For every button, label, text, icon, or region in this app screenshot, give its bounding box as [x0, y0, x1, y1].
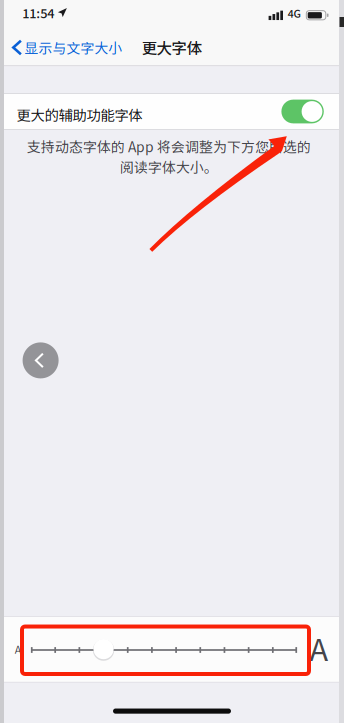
staticText: 11:54 [22, 3, 54, 22]
staticText: A [309, 625, 328, 670]
staticText: 更大的辅助功能字体 [16, 104, 142, 125]
staticText: 显示与文字大小 [24, 38, 122, 57]
button[interactable]: 返回 [23, 342, 59, 378]
staticText: 更大字体 [141, 36, 201, 58]
staticText: 阅读字体大小。 [120, 157, 218, 177]
staticText: 4G [288, 5, 301, 21]
button[interactable]: 显示与文字大小 [8, 31, 128, 63]
staticText: A [15, 641, 21, 657]
button[interactable]: 更大的辅助功能字体 [0, 94, 344, 129]
staticText: 支持动态字体的 App 将会调整为下方您所选的 [27, 136, 311, 156]
